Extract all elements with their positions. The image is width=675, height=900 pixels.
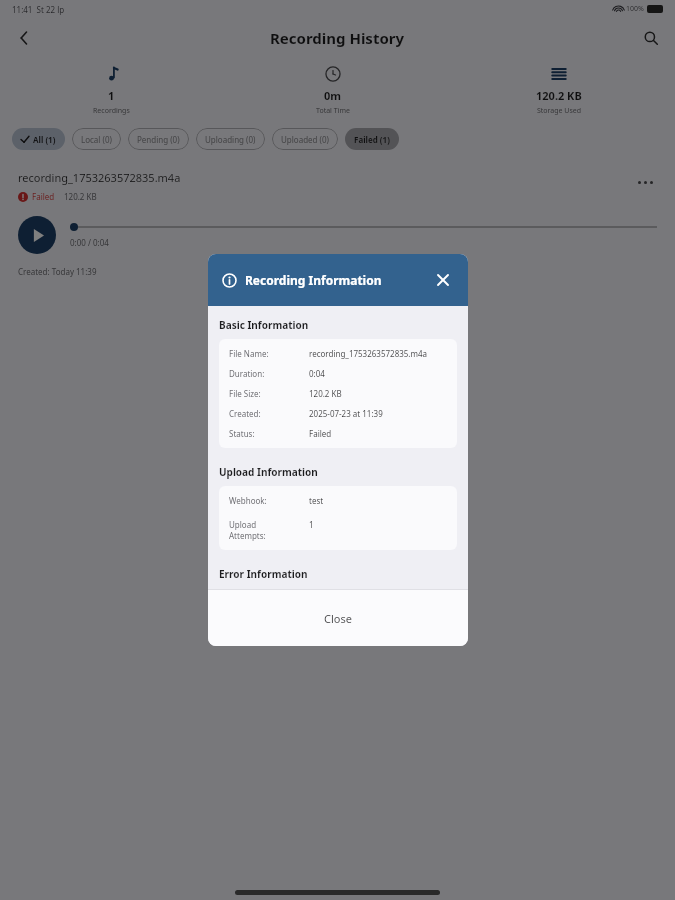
staticText: Created: Today 11:39 <box>18 266 97 277</box>
staticText: test <box>309 495 447 506</box>
button[interactable]: Pending (0) <box>128 128 189 150</box>
staticText: Pending (0) <box>137 134 180 145</box>
staticText: 120.2 KB <box>309 388 447 399</box>
staticText: Webhook: <box>229 495 267 506</box>
button[interactable]: Local (0) <box>72 128 121 150</box>
staticText: Recording History <box>270 28 405 48</box>
staticText: Created: <box>229 408 261 419</box>
button[interactable]: Close <box>208 589 468 646</box>
button[interactable]: All (1) <box>12 128 65 150</box>
staticText: Duration: <box>229 368 265 379</box>
staticText: File Name: <box>229 348 269 359</box>
staticText: Recordings <box>93 106 130 116</box>
staticText: recording_1753263572835.m4a <box>309 348 447 359</box>
button[interactable]: Search <box>635 22 667 54</box>
staticText: 120.2 KB <box>64 191 97 202</box>
staticText: Upload Information <box>219 465 318 479</box>
staticText: Error Information <box>219 567 308 581</box>
staticText: File Size: <box>229 388 261 399</box>
button[interactable]: More options <box>633 170 657 194</box>
staticText: 120.2 KB <box>536 88 582 103</box>
staticText: Total Time <box>316 106 350 116</box>
staticText: 11:41 St 22 lp <box>12 4 65 15</box>
staticText: Failed <box>309 428 447 439</box>
button[interactable]: Back <box>8 22 40 54</box>
staticText: Failed <box>32 191 55 202</box>
staticText: 0:04 <box>309 368 447 379</box>
button[interactable]: Close dialog <box>432 269 454 291</box>
staticText: 2025-07-23 at 11:39 <box>309 408 447 419</box>
staticText: recording_1753263572835.m4a <box>18 170 181 185</box>
staticText: Uploaded (0) <box>281 134 329 145</box>
staticText: All (1) <box>33 134 56 145</box>
staticText: Upload Attempts: <box>229 519 266 541</box>
staticText: Status: <box>229 428 255 439</box>
staticText: 1 <box>309 519 314 530</box>
button[interactable]: Uploaded (0) <box>272 128 338 150</box>
button[interactable]: Failed (1) <box>345 128 399 150</box>
staticText: Uploading (0) <box>205 134 256 145</box>
staticText: 100% <box>626 4 644 14</box>
staticText: 0m <box>324 88 342 103</box>
staticText: 0:00 / 0:04 <box>70 237 109 248</box>
staticText: Local (0) <box>81 134 112 145</box>
button[interactable]: Uploading (0) <box>196 128 265 150</box>
staticText: Basic Information <box>219 318 309 332</box>
staticText: Storage Used <box>537 106 582 116</box>
staticText: 1 <box>108 88 115 103</box>
staticText: Close <box>324 611 352 626</box>
staticText: Recording Information <box>245 272 382 288</box>
staticText: Failed (1) <box>354 134 390 145</box>
button[interactable]: Play <box>18 216 56 254</box>
